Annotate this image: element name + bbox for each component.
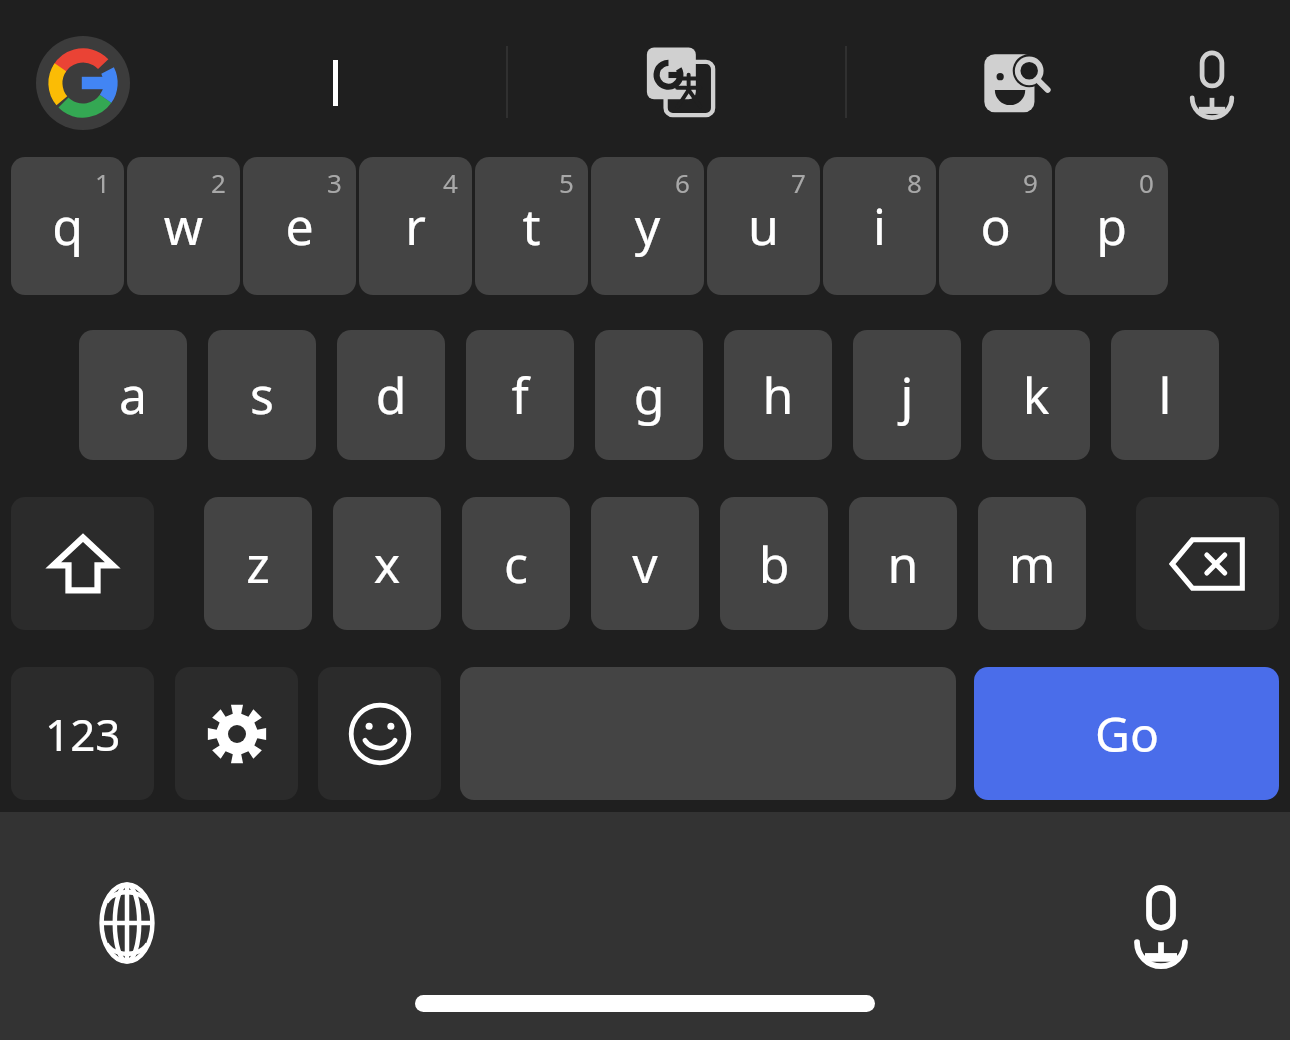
button[interactable]: b	[720, 497, 828, 630]
staticText: c	[462, 530, 570, 598]
staticText: j	[853, 361, 961, 429]
staticText: 5	[559, 165, 574, 200]
button[interactable]: n	[849, 497, 957, 630]
button[interactable]: Backspace	[1136, 497, 1279, 630]
button[interactable]: c	[462, 497, 570, 630]
staticText: q	[11, 192, 124, 260]
staticText: k	[982, 361, 1090, 429]
button[interactable]: e	[243, 157, 356, 295]
staticText: h	[724, 361, 832, 429]
button[interactable]: 123	[11, 667, 154, 800]
button[interactable]: j	[853, 330, 961, 460]
staticText: l	[1111, 361, 1219, 429]
button[interactable]: p	[1055, 157, 1168, 295]
button[interactable]: q	[11, 157, 124, 295]
staticText: 7	[791, 165, 806, 200]
button[interactable]: Go	[974, 667, 1279, 800]
button[interactable]: Voice input	[1106, 868, 1216, 978]
staticText: s	[208, 361, 316, 429]
staticText: v	[591, 530, 699, 598]
button[interactable]: z	[204, 497, 312, 630]
button[interactable]: r	[359, 157, 472, 295]
staticText: n	[849, 530, 957, 598]
button[interactable]: Change language	[72, 868, 182, 978]
button[interactable]: v	[591, 497, 699, 630]
staticText: b	[720, 530, 828, 598]
staticText: 0	[1139, 165, 1154, 200]
staticText: d	[337, 361, 445, 429]
staticText: p	[1055, 192, 1168, 260]
button[interactable]: Emoji	[318, 667, 441, 800]
staticText: 8	[907, 165, 922, 200]
button[interactable]: Settings	[175, 667, 298, 800]
button[interactable]: x	[333, 497, 441, 630]
button[interactable]: u	[707, 157, 820, 295]
staticText: y	[591, 192, 704, 260]
staticText: g	[595, 361, 703, 429]
button[interactable]: i	[823, 157, 936, 295]
button[interactable]: d	[337, 330, 445, 460]
staticText: o	[939, 192, 1052, 260]
staticText: i	[823, 192, 936, 260]
staticText: r	[359, 192, 472, 260]
staticText: 3	[327, 165, 342, 200]
staticText: 9	[1023, 165, 1038, 200]
staticText: e	[243, 192, 356, 260]
button[interactable]: Google Search	[36, 36, 130, 130]
button[interactable]: g	[595, 330, 703, 460]
button[interactable]: h	[724, 330, 832, 460]
staticText: 123	[45, 704, 121, 764]
button[interactable]: Translate	[624, 26, 736, 138]
staticText: x	[333, 530, 441, 598]
button[interactable]: w	[127, 157, 240, 295]
staticText: f	[466, 361, 574, 429]
button[interactable]: o	[939, 157, 1052, 295]
staticText: z	[204, 530, 312, 598]
button[interactable]: t	[475, 157, 588, 295]
button[interactable]: k	[982, 330, 1090, 460]
button[interactable]: a	[79, 330, 187, 460]
button[interactable]: Voice input	[1156, 26, 1268, 138]
staticText: 2	[211, 165, 226, 200]
button[interactable]: s	[208, 330, 316, 460]
button[interactable]: Shift	[11, 497, 154, 630]
staticText: 4	[443, 165, 458, 200]
staticText: t	[475, 192, 588, 260]
button[interactable]: Search stickers	[960, 26, 1072, 138]
staticText: a	[79, 361, 187, 429]
staticText: m	[978, 530, 1086, 598]
staticText: w	[127, 192, 240, 260]
staticText: 1	[95, 165, 110, 200]
button[interactable]: m	[978, 497, 1086, 630]
button[interactable]: l	[1111, 330, 1219, 460]
staticText: 6	[675, 165, 690, 200]
staticText: Go	[1095, 701, 1159, 766]
button[interactable]: f	[466, 330, 574, 460]
staticText: u	[707, 192, 820, 260]
button[interactable]: y	[591, 157, 704, 295]
